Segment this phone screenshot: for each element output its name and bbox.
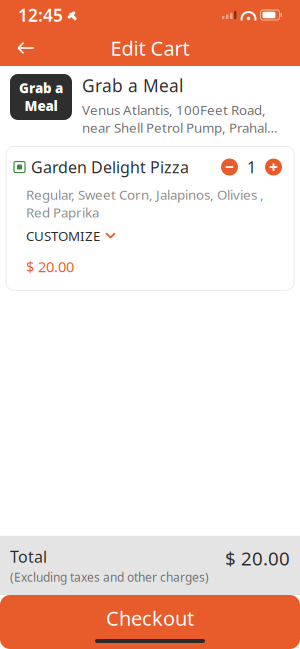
staticText: $ 20.00 — [26, 257, 74, 276]
button[interactable]: Decrease quantity — [221, 159, 238, 176]
staticText: Meal — [24, 97, 57, 115]
staticText: 1 — [247, 156, 256, 178]
staticText: Grab a — [19, 79, 63, 97]
staticText: $ 20.00 — [225, 546, 290, 571]
staticText: Checkout — [106, 605, 194, 631]
staticText: Grab a Meal — [82, 74, 183, 97]
staticText: Venus Atlantis, 100Feet Road, near Shell… — [82, 101, 280, 136]
staticText: Regular, Sweet Corn, Jalapinos, Olivies … — [26, 186, 264, 221]
staticText: CUSTOMIZE — [26, 227, 100, 245]
button[interactable]: CUSTOMIZE — [14, 221, 286, 245]
staticText: Total — [10, 546, 47, 567]
staticText: Edit Cart — [110, 35, 189, 61]
staticText: 12:45 — [18, 3, 63, 26]
button[interactable]: Increase quantity — [265, 159, 282, 176]
button[interactable]: Checkout — [0, 595, 300, 649]
staticText: Garden Delight Pizza — [31, 156, 189, 178]
button[interactable]: Back — [6, 31, 46, 65]
staticText: (Excluding taxes and other charges) — [10, 569, 209, 585]
